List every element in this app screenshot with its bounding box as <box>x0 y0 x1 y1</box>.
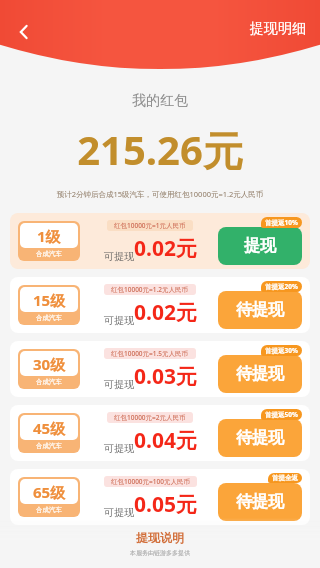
staticText: 我的红包 <box>0 92 320 110</box>
staticText: 1级 <box>37 226 61 246</box>
staticText: 待提现 <box>236 492 284 512</box>
staticText: 首提返20% <box>265 282 298 291</box>
staticText: 30级 <box>33 354 66 374</box>
button[interactable]: 待提现 <box>218 483 302 521</box>
button[interactable]: 待提现 <box>218 291 302 329</box>
staticText: 可提现 <box>104 378 134 391</box>
button[interactable]: 15级 <box>10 277 310 333</box>
staticText: 合成汽车 <box>36 442 62 450</box>
staticText: 首提全返 <box>272 474 298 482</box>
staticText: 合成汽车 <box>36 506 62 514</box>
staticText: 提现明细 <box>250 20 306 38</box>
staticText: 0.03元 <box>134 362 197 391</box>
staticText: 45级 <box>33 418 66 438</box>
staticText: 0.04元 <box>134 426 197 455</box>
staticText: 合成汽车 <box>36 314 62 322</box>
staticText: 提现 <box>244 236 276 256</box>
staticText: 0.02元 <box>134 234 197 263</box>
staticText: 首提返30% <box>265 346 298 355</box>
staticText: 首提返10% <box>265 218 298 227</box>
staticText: 0.05元 <box>134 490 197 519</box>
staticText: 待提现 <box>236 428 284 448</box>
button[interactable]: Back <box>6 14 42 50</box>
staticText: 15级 <box>33 290 66 310</box>
staticText: 红包10000元=100元人民币 <box>111 477 190 486</box>
staticText: 可提现 <box>104 506 134 519</box>
button[interactable]: 45级 <box>10 405 310 461</box>
button[interactable]: 提现说明 <box>0 518 320 568</box>
staticText: 待提现 <box>236 364 284 384</box>
staticText: 提现说明 <box>136 530 184 545</box>
button[interactable]: 30级 <box>10 341 310 397</box>
staticText: 红包10000元=2元人民币 <box>114 413 186 422</box>
staticText: 可提现 <box>104 314 134 327</box>
staticText: 本服务由链游多多提供 <box>130 549 190 557</box>
button[interactable]: 待提现 <box>218 355 302 393</box>
staticText: 待提现 <box>236 300 284 320</box>
staticText: 合成汽车 <box>36 378 62 386</box>
button[interactable]: 提现 <box>218 227 302 265</box>
staticText: 红包10000元=1.2元人民币 <box>111 285 189 294</box>
staticText: 可提现 <box>104 442 134 455</box>
staticText: 合成汽车 <box>36 250 62 258</box>
staticText: 首提返50% <box>265 410 298 419</box>
button[interactable]: 65级 <box>10 469 310 525</box>
staticText: 0.02元 <box>134 298 197 327</box>
staticText: 红包10000元=1元人民币 <box>114 221 186 230</box>
button[interactable]: 待提现 <box>218 419 302 457</box>
staticText: 红包10000元=1.5元人民币 <box>111 349 189 358</box>
staticText: 可提现 <box>104 250 134 263</box>
button[interactable]: 1级 <box>10 213 310 269</box>
staticText: 65级 <box>33 482 66 502</box>
staticText: 预计2分钟后合成15级汽车，可使用红包10000元=1.2元人民币 <box>0 189 320 199</box>
staticText: 215.26元 <box>0 122 320 177</box>
